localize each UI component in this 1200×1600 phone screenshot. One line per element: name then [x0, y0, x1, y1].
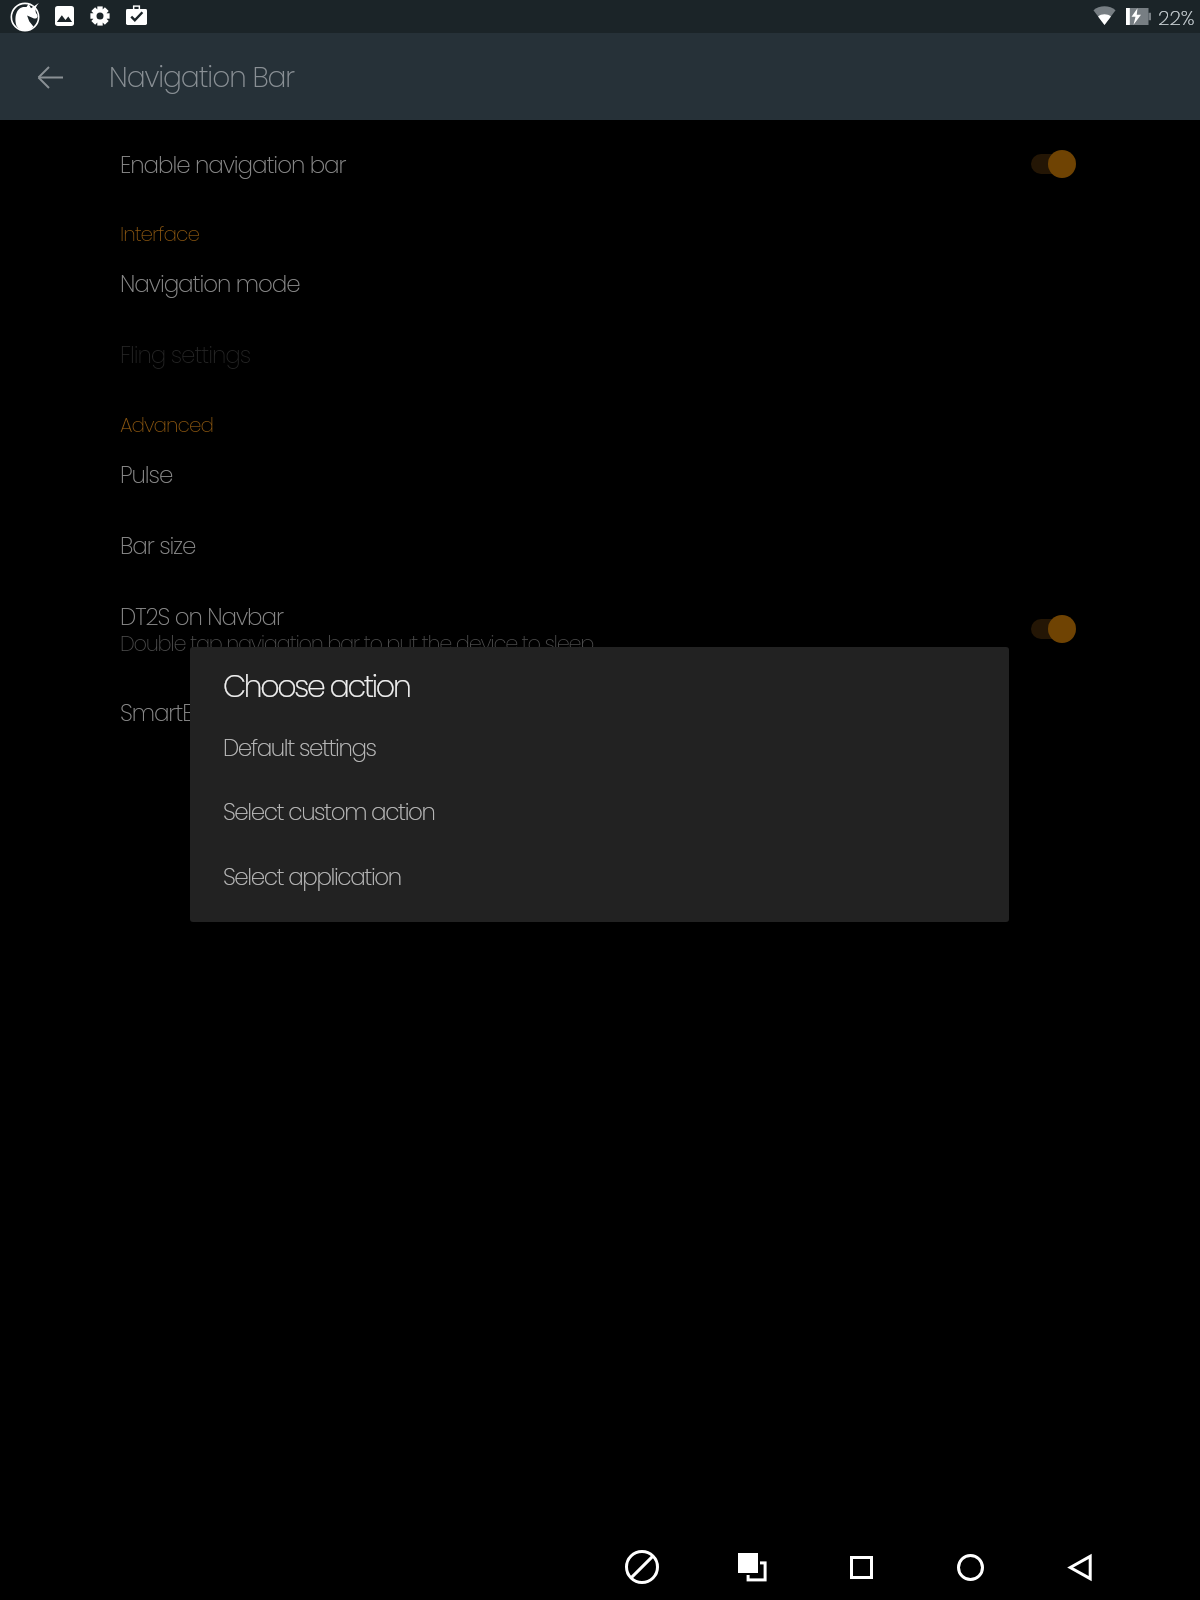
button[interactable]: Back — [26, 53, 74, 101]
button[interactable]: DT2S on Navbar — [0, 588, 1200, 646]
staticText: Interface — [120, 220, 199, 248]
button[interactable]: Pulse — [0, 446, 1200, 504]
staticText: Navigation Bar — [109, 58, 295, 97]
button[interactable]: Select application — [190, 849, 1009, 905]
button[interactable]: Toggle — [1031, 150, 1076, 178]
button[interactable]: Home — [938, 1535, 1002, 1599]
staticText: Advanced — [120, 411, 213, 439]
staticText: Choose action — [223, 666, 410, 708]
button[interactable]: SmartBar — [0, 684, 1200, 742]
button[interactable]: Recents — [829, 1535, 893, 1599]
staticText: DT2S on Navbar — [120, 601, 283, 633]
staticText: Select custom action — [223, 796, 435, 828]
button[interactable]: Bar size — [0, 517, 1200, 575]
button[interactable]: Do not disturb — [610, 1535, 674, 1599]
staticText: Double tap navigation bar to put the dev… — [120, 629, 594, 658]
staticText: SmartBar — [120, 697, 216, 729]
staticText: Enable navigation bar — [120, 149, 346, 181]
button[interactable]: Enable navigation bar — [0, 136, 1200, 194]
staticText: Fling settings — [120, 339, 251, 371]
staticText: Pulse — [120, 459, 173, 491]
button[interactable]: Back — [1048, 1535, 1112, 1599]
staticText: Navigation mode — [120, 268, 300, 300]
staticText: Select application — [223, 861, 401, 893]
staticText: Bar size — [120, 530, 196, 562]
button[interactable]: Toggle — [1031, 615, 1076, 643]
button[interactable]: Navigation mode — [0, 255, 1200, 313]
staticText: Default settings — [223, 732, 376, 764]
button[interactable]: Default settings — [190, 720, 1009, 776]
button[interactable]: Split screen — [720, 1535, 784, 1599]
staticText: 22% — [1158, 4, 1195, 32]
button[interactable]: Select custom action — [190, 784, 1009, 840]
